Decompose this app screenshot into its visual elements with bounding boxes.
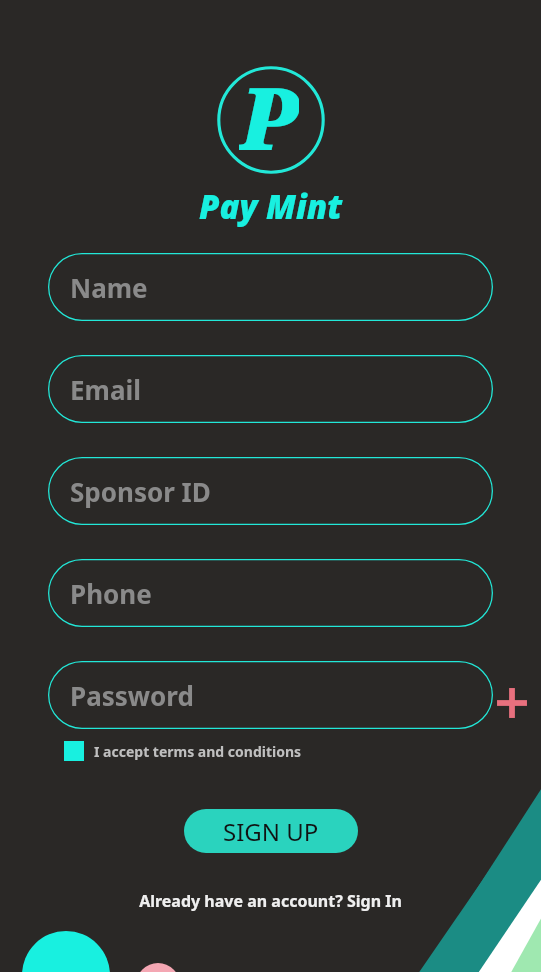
button[interactable]: Phone	[48, 559, 493, 627]
staticText: I accept terms and conditions	[94, 742, 302, 761]
staticText: Pay Mint	[199, 184, 343, 229]
staticText: P	[239, 58, 299, 174]
button[interactable]: Already have an account? Sign In	[139, 890, 402, 912]
button[interactable]: SIGN UP	[184, 809, 358, 853]
button[interactable]: Email	[48, 355, 493, 423]
button[interactable]: Password	[48, 661, 493, 729]
staticText: SIGN UP	[223, 815, 319, 848]
staticText: Password	[70, 678, 194, 713]
button[interactable]: Name	[48, 253, 493, 321]
staticText: Name	[70, 270, 148, 305]
staticText: Email	[70, 372, 142, 407]
button[interactable]: Sponsor ID	[48, 457, 493, 525]
staticText: Already have an account? Sign In	[139, 890, 402, 912]
staticText: Sponsor ID	[70, 474, 211, 509]
staticText: Phone	[70, 576, 152, 611]
button[interactable]: I accept terms and conditions	[64, 741, 517, 761]
